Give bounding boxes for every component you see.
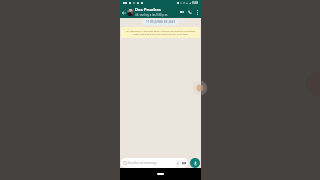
button[interactable]: More options (194, 9, 200, 15)
staticText: Dos Pruebas (135, 7, 161, 13)
button[interactable]: Voice message (190, 158, 200, 168)
button[interactable]: Los mensajes y llamadas están cifrados d… (121, 27, 200, 38)
staticText: últ. vez hoy a las 9:38 p.m. (135, 13, 168, 17)
button[interactable]: 11 DE JUNIO DE 2023 (143, 19, 178, 25)
staticText: 9:38 (192, 1, 198, 5)
button[interactable]: Back (120, 9, 127, 16)
staticText: 11 DE JUNIO DE 2023 (146, 20, 175, 24)
button[interactable]: Video call (178, 8, 186, 16)
button[interactable]: Escribe un mensaje (121, 158, 188, 168)
staticText: Escribe un mensaje (128, 161, 158, 165)
staticText: Los mensajes y llamadas están cifrados d… (123, 29, 198, 36)
button[interactable]: Voice call (186, 8, 194, 16)
